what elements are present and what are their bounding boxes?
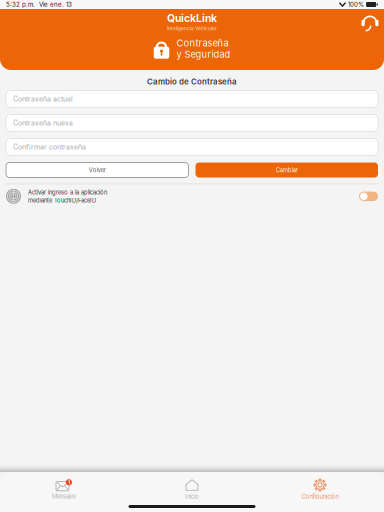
- button[interactable]: Soporte: [356, 9, 384, 37]
- staticText: Mensajes: [52, 493, 76, 500]
- staticText: Activar ingreso a la aplicación: [28, 189, 107, 196]
- staticText: 1: [68, 479, 70, 485]
- staticText: Configuración: [301, 493, 338, 500]
- staticText: Confirmar contraseña: [13, 143, 86, 151]
- button[interactable]: 1: [0, 479, 128, 500]
- staticText: Inicio: [185, 493, 199, 500]
- staticText: Inteligencia Vehicular: [167, 26, 217, 31]
- button[interactable]: Inicio: [128, 479, 256, 500]
- staticText: QuickLink: [167, 12, 217, 25]
- staticText: Vie ene. 13: [39, 1, 72, 8]
- button[interactable]: Cambiar: [195, 162, 378, 177]
- staticText: Contraseña actual: [13, 95, 73, 103]
- staticText: Contraseña: [176, 37, 228, 49]
- button[interactable]: Volver: [6, 162, 188, 177]
- staticText: y Seguridad: [176, 49, 230, 60]
- staticText: Cambio de Contraseña: [147, 77, 237, 86]
- staticText: mediante TouchID/FaceID: [28, 197, 96, 204]
- staticText: 5:32 p.m.: [6, 1, 35, 8]
- staticText: Cambiar: [276, 166, 298, 174]
- staticText: 100%: [348, 1, 364, 8]
- button[interactable]: Activar ingreso a la aplicación: [0, 184, 384, 208]
- staticText: Contraseña nueva: [13, 119, 73, 127]
- staticText: Volver: [89, 166, 106, 174]
- button[interactable]: Configuración: [256, 479, 384, 500]
